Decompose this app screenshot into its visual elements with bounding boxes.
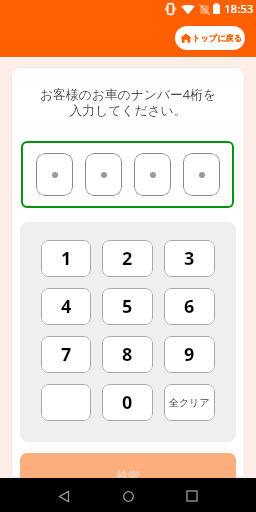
staticText: 6 xyxy=(184,294,195,319)
staticText: 4 xyxy=(61,294,72,319)
button[interactable]: 5 xyxy=(102,288,153,325)
button[interactable]: 全クリア xyxy=(164,384,215,421)
staticText: 18:53 xyxy=(224,1,254,17)
staticText: 全クリア xyxy=(169,396,210,409)
button[interactable] xyxy=(41,384,91,421)
staticText: 2 xyxy=(122,246,133,271)
button[interactable]: Recents xyxy=(174,479,210,512)
staticText: 5 xyxy=(122,294,133,319)
button[interactable]: 3 xyxy=(164,240,215,277)
staticText: 7 xyxy=(61,342,72,367)
button[interactable]: 1 xyxy=(41,240,91,277)
button[interactable]: 検索 xyxy=(20,453,236,493)
button[interactable]: 0 xyxy=(102,384,153,421)
button[interactable]: 6 xyxy=(164,288,215,325)
staticText: 8 xyxy=(122,342,133,367)
staticText: 0 xyxy=(122,390,133,415)
button[interactable]: 8 xyxy=(102,336,153,373)
staticText: お客様のお車のナンバー4桁を 入力してください。 xyxy=(11,85,245,119)
button[interactable]: Back xyxy=(46,479,82,512)
staticText: トップに戻る xyxy=(192,33,241,43)
staticText: 3 xyxy=(184,246,195,271)
button[interactable]: トップに戻る xyxy=(175,26,245,50)
button[interactable]: 7 xyxy=(41,336,91,373)
staticText: 1 xyxy=(61,246,72,271)
staticText: 9 xyxy=(184,342,195,367)
button[interactable]: Home xyxy=(110,479,146,512)
button[interactable]: 4 xyxy=(41,288,91,325)
staticText: 検索 xyxy=(116,469,140,484)
button[interactable]: 2 xyxy=(102,240,153,277)
button[interactable]: 9 xyxy=(164,336,215,373)
